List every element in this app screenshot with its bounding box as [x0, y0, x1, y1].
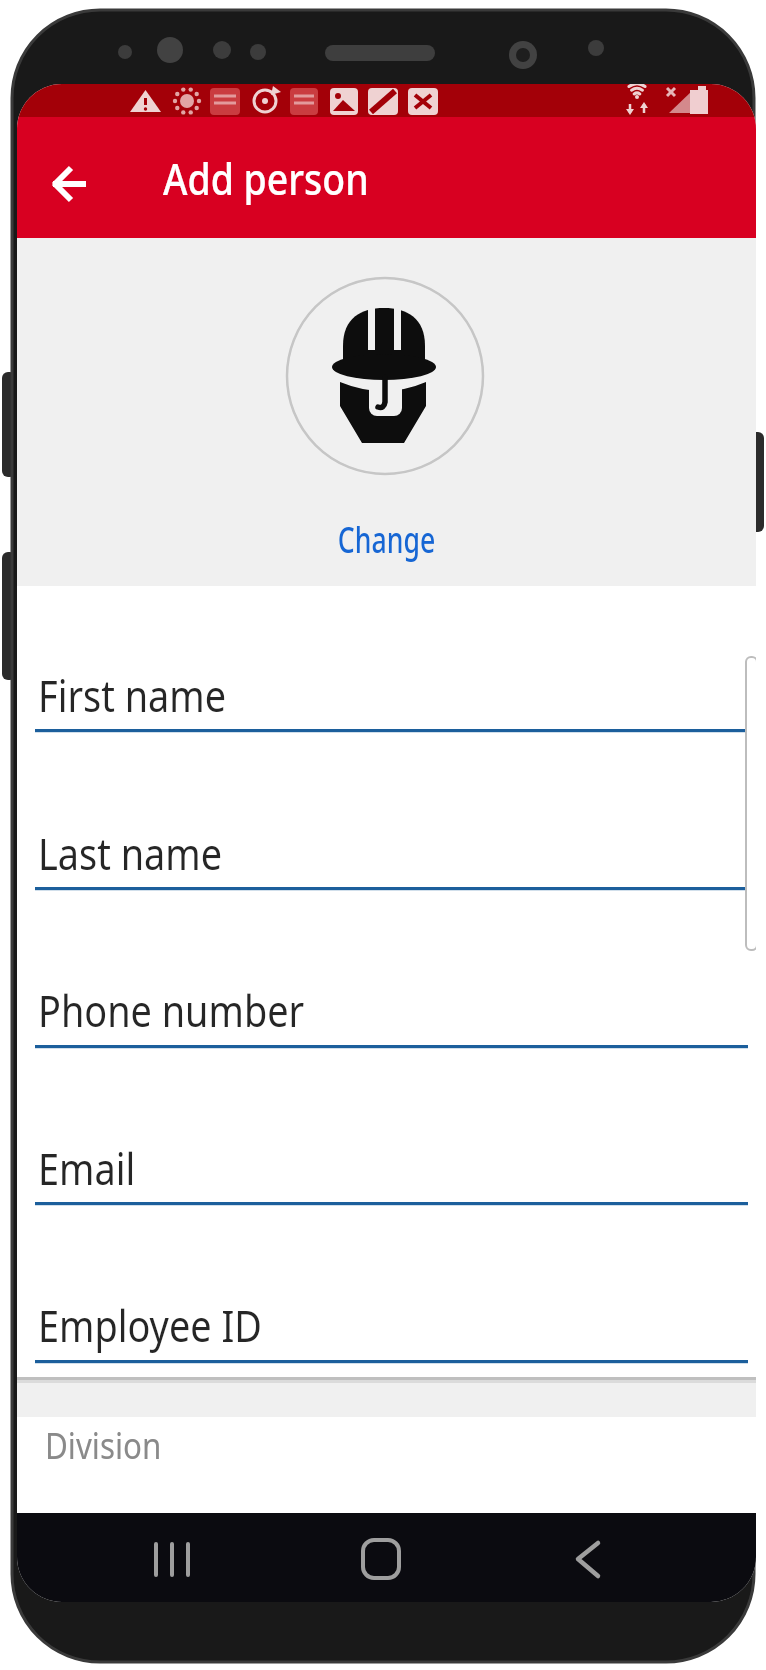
button[interactable]: Change: [17, 515, 756, 564]
staticText: Employee ID: [38, 1296, 262, 1355]
staticText: First name: [38, 666, 226, 725]
staticText: Add person: [163, 149, 369, 208]
button[interactable]: [547, 1519, 627, 1599]
button[interactable]: [35, 973, 748, 1043]
staticText: Division: [45, 1421, 162, 1470]
button[interactable]: [35, 1131, 748, 1201]
staticText: Phone number: [38, 981, 305, 1040]
staticText: Last name: [38, 824, 223, 883]
button[interactable]: [35, 658, 748, 728]
button[interactable]: [35, 1288, 748, 1358]
button[interactable]: [341, 1519, 421, 1599]
button[interactable]: [35, 151, 103, 219]
button[interactable]: [287, 278, 483, 474]
button[interactable]: [35, 816, 748, 886]
button[interactable]: [17, 1417, 756, 1513]
button[interactable]: [131, 1519, 211, 1599]
staticText: Email: [38, 1139, 136, 1198]
